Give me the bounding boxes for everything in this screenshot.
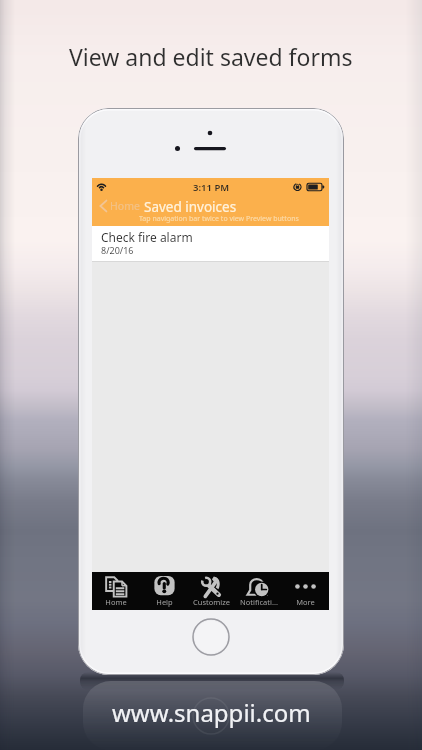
button[interactable]: Home bbox=[92, 572, 140, 610]
button[interactable]: Notificati... bbox=[235, 572, 282, 610]
staticText: View and edit saved forms bbox=[69, 41, 353, 72]
staticText: Home bbox=[105, 597, 127, 607]
button[interactable]: Check fire alarm bbox=[92, 226, 329, 262]
button[interactable]: More bbox=[282, 572, 329, 610]
staticText: 8/20/16 bbox=[101, 244, 134, 256]
button[interactable]: Help bbox=[140, 572, 188, 610]
staticText: 3:11 PM bbox=[193, 181, 230, 194]
button[interactable]: Home bbox=[98, 198, 138, 214]
staticText: Tap navigation bar twice to view Preview… bbox=[139, 214, 299, 224]
staticText: More bbox=[296, 597, 315, 607]
staticText: Check fire alarm bbox=[101, 229, 193, 245]
other: Wi-Fi bbox=[96, 181, 107, 192]
staticText: www.snappii.com bbox=[112, 696, 311, 729]
staticText: Home bbox=[110, 199, 140, 213]
staticText: Help bbox=[156, 597, 173, 607]
other: Battery bbox=[291, 180, 325, 194]
button[interactable]: Customize bbox=[188, 572, 235, 610]
staticText: Customize bbox=[193, 597, 230, 607]
staticText: Notificati... bbox=[240, 597, 278, 607]
staticText: Saved invoices bbox=[144, 198, 237, 216]
